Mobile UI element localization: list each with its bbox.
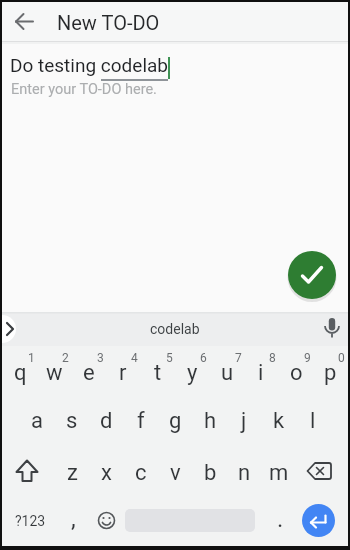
staticText: n bbox=[238, 460, 251, 486]
button[interactable]: k bbox=[262, 397, 296, 445]
staticText: r bbox=[119, 360, 127, 386]
staticText: p bbox=[324, 360, 337, 386]
staticText: y bbox=[187, 360, 198, 386]
staticText: 4 bbox=[131, 351, 138, 365]
button[interactable]: u bbox=[210, 349, 244, 397]
button[interactable]: p bbox=[313, 349, 347, 397]
staticText: k bbox=[273, 408, 285, 434]
staticText: v bbox=[170, 460, 181, 486]
staticText: f bbox=[137, 408, 145, 434]
staticText: 5 bbox=[166, 351, 173, 365]
staticText: i bbox=[258, 360, 264, 386]
staticText: l bbox=[310, 408, 316, 434]
button[interactable]: x bbox=[89, 449, 123, 497]
staticText: codelab bbox=[150, 321, 200, 337]
staticText: 0 bbox=[338, 351, 345, 365]
button[interactable]: t bbox=[141, 349, 175, 397]
staticText: d bbox=[100, 408, 113, 434]
staticText: 2 bbox=[62, 351, 69, 365]
button[interactable]: o bbox=[279, 349, 313, 397]
button[interactable]: f bbox=[124, 397, 158, 445]
button[interactable]: i bbox=[244, 349, 278, 397]
staticText: q bbox=[14, 360, 27, 386]
staticText: 3 bbox=[97, 351, 104, 365]
staticText: 7 bbox=[235, 351, 242, 365]
button[interactable]: d bbox=[89, 397, 123, 445]
button[interactable]: codelab bbox=[150, 321, 200, 337]
staticText: s bbox=[66, 408, 78, 434]
button[interactable]: v bbox=[158, 449, 192, 497]
button[interactable]: q bbox=[3, 349, 37, 397]
staticText: a bbox=[31, 408, 43, 434]
staticText: , bbox=[71, 505, 76, 533]
staticText: x bbox=[101, 460, 112, 486]
staticText: m bbox=[269, 460, 289, 486]
button[interactable]: , bbox=[56, 495, 90, 543]
button[interactable]: b bbox=[193, 449, 227, 497]
staticText: c bbox=[135, 460, 147, 486]
staticText: 1 bbox=[28, 351, 35, 365]
staticText: h bbox=[204, 408, 217, 434]
staticText: o bbox=[290, 360, 303, 386]
staticText: 9 bbox=[304, 351, 311, 365]
staticText: w bbox=[46, 360, 63, 386]
button[interactable]: h bbox=[193, 397, 227, 445]
button[interactable] bbox=[288, 251, 336, 299]
staticText: b bbox=[204, 460, 217, 486]
button[interactable]: j bbox=[227, 397, 261, 445]
button[interactable]: z bbox=[55, 449, 89, 497]
button[interactable]: g bbox=[158, 397, 192, 445]
button[interactable]: m bbox=[262, 449, 296, 497]
button[interactable]: c bbox=[124, 449, 158, 497]
button[interactable]: l bbox=[296, 397, 330, 445]
staticText: z bbox=[67, 460, 78, 486]
button[interactable] bbox=[0, 315, 16, 343]
button[interactable]: n bbox=[227, 449, 261, 497]
button[interactable]: w bbox=[37, 349, 71, 397]
staticText: e bbox=[83, 360, 95, 386]
staticText: New TO-DO bbox=[57, 11, 160, 34]
staticText: . bbox=[277, 505, 284, 533]
button[interactable]: . bbox=[263, 495, 297, 543]
staticText: t bbox=[154, 360, 162, 386]
staticText: Do testing codelab bbox=[10, 54, 169, 76]
staticText: Enter your TO-DO here. bbox=[11, 81, 157, 98]
button[interactable]: y bbox=[175, 349, 209, 397]
staticText: ?123 bbox=[15, 513, 46, 529]
button[interactable]: e bbox=[72, 349, 106, 397]
staticText: 8 bbox=[269, 351, 276, 365]
staticText: j bbox=[241, 408, 247, 434]
button[interactable] bbox=[8, 5, 41, 38]
button[interactable]: ?123 bbox=[6, 507, 54, 535]
staticText: 6 bbox=[200, 351, 207, 365]
button[interactable]: r bbox=[106, 349, 140, 397]
staticText: g bbox=[169, 408, 182, 434]
button[interactable]: a bbox=[20, 397, 54, 445]
button[interactable] bbox=[302, 504, 335, 537]
button[interactable]: s bbox=[55, 397, 89, 445]
staticText: u bbox=[221, 360, 234, 386]
